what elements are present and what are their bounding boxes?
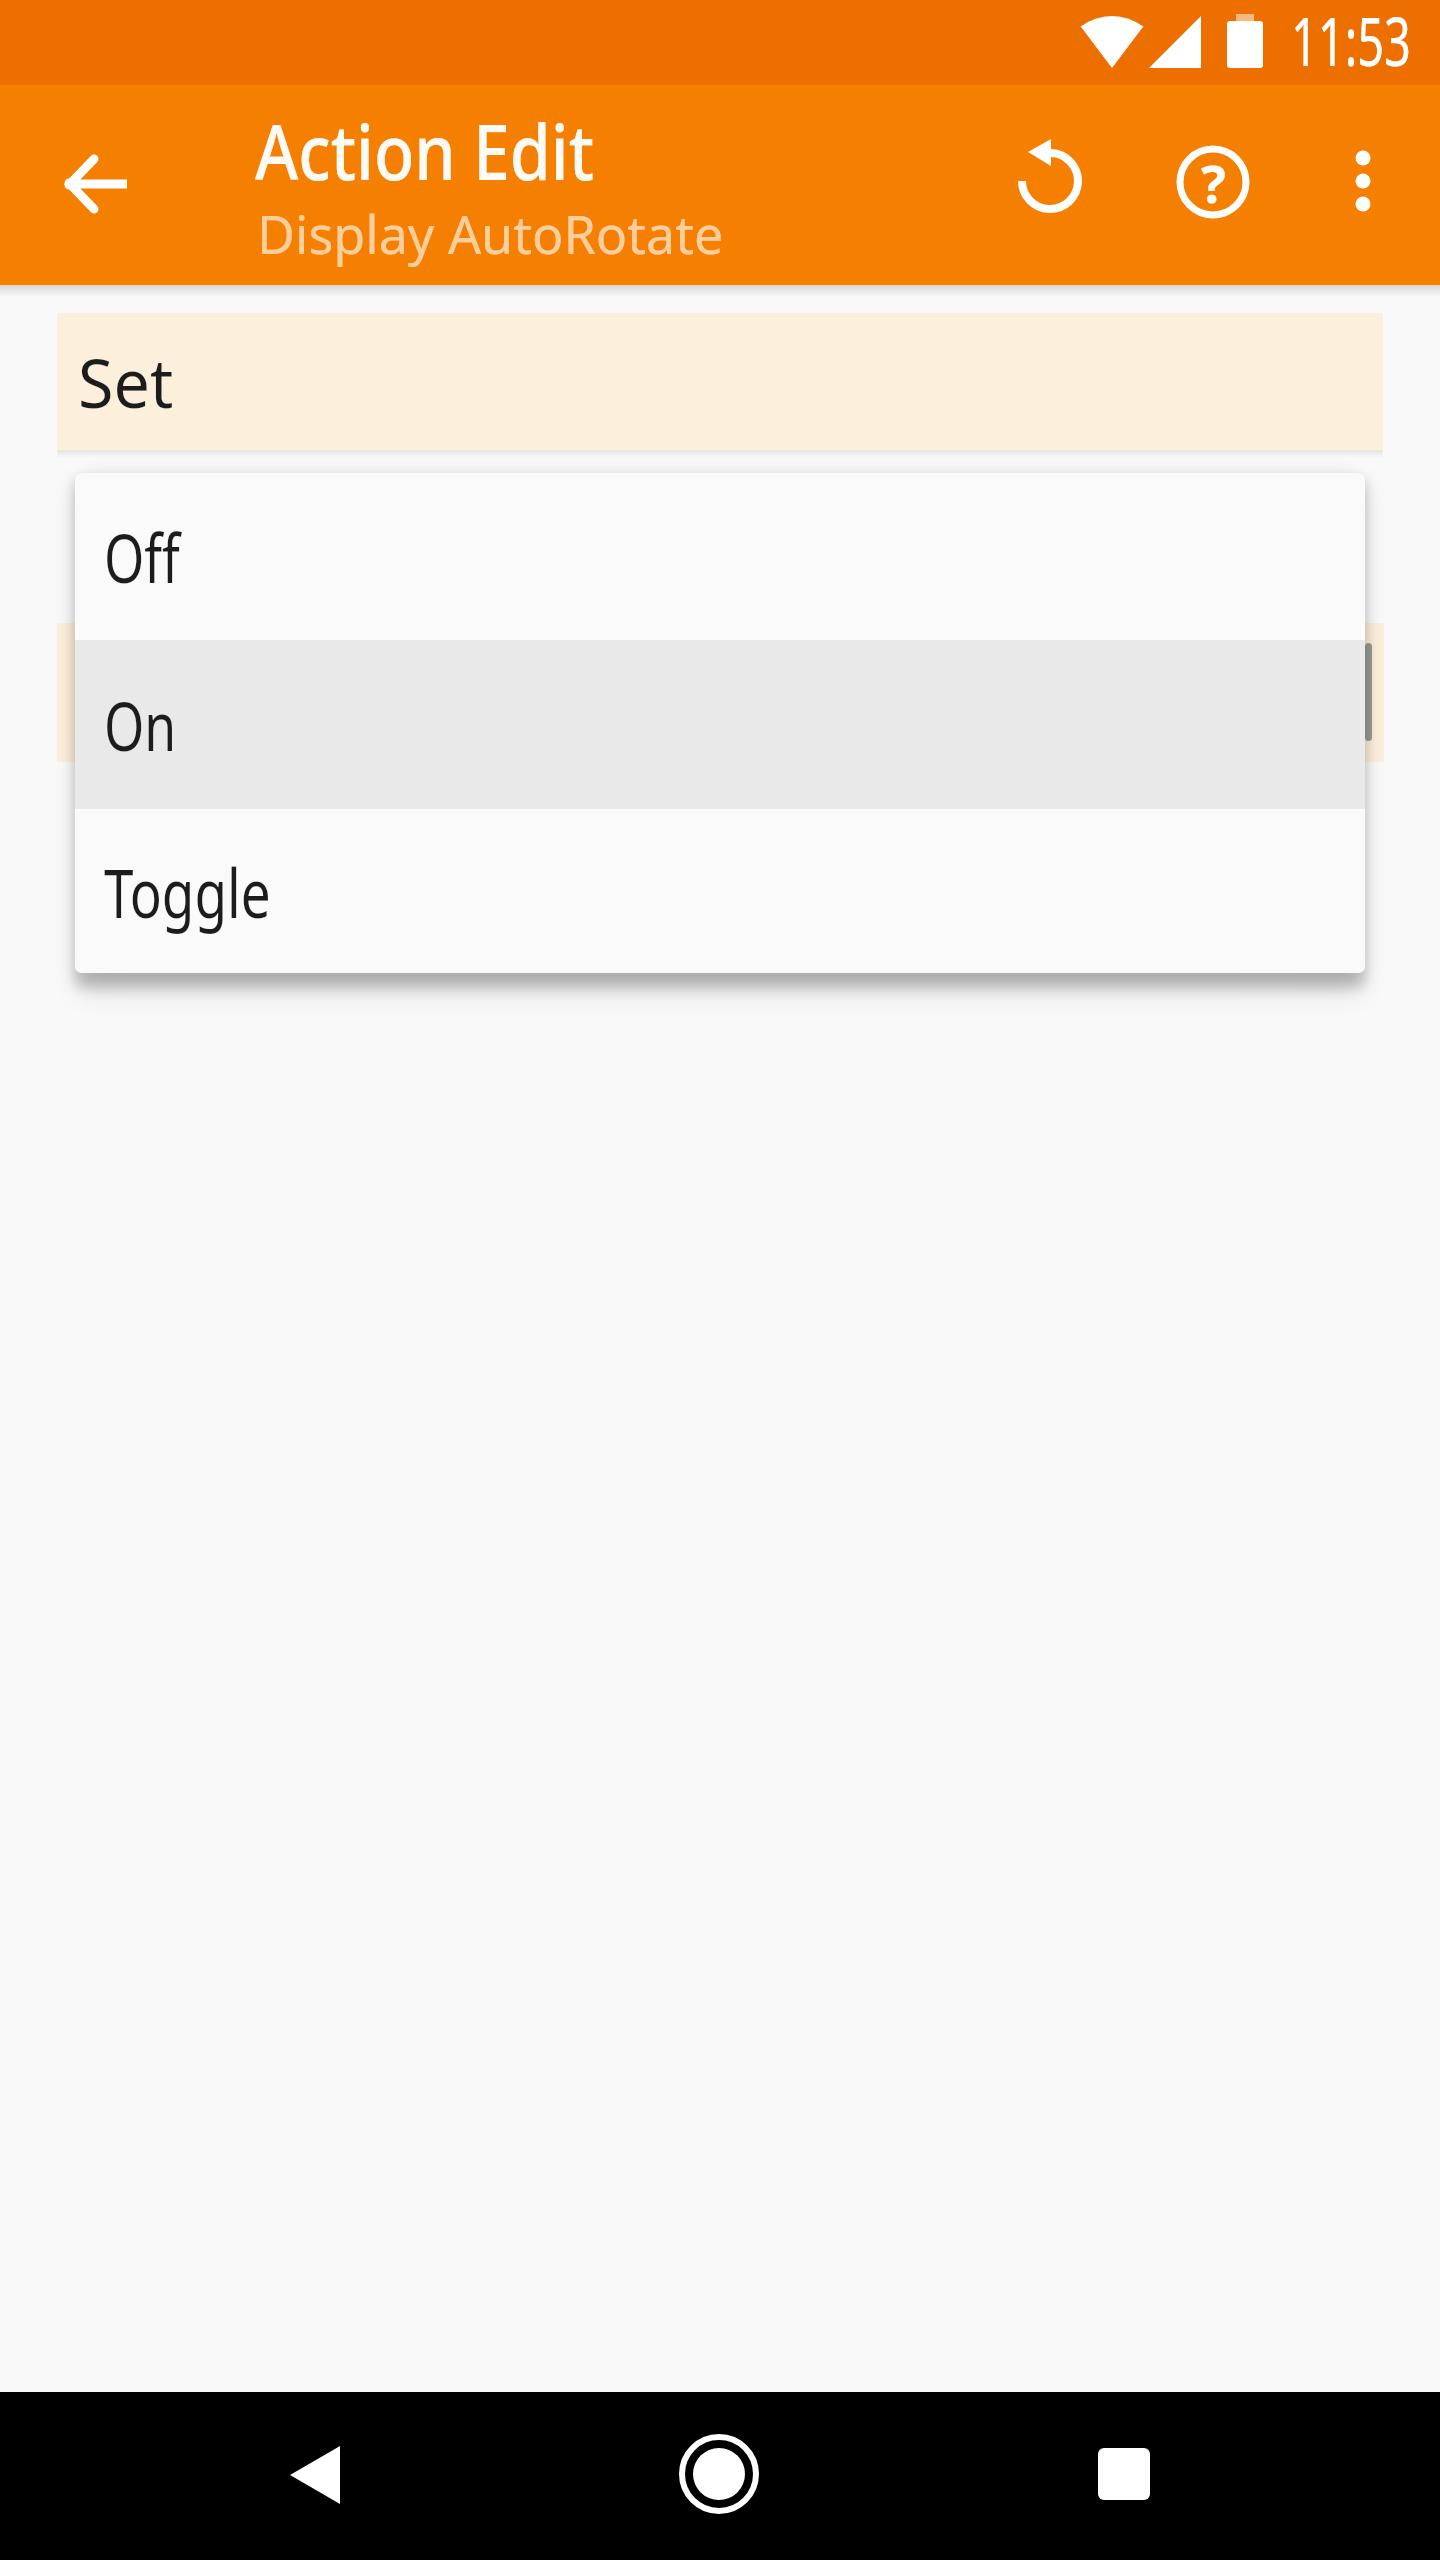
button[interactable] — [47, 134, 147, 234]
staticText: 11:53 — [1291, 0, 1411, 78]
button[interactable]: On — [75, 640, 1365, 809]
button[interactable] — [669, 2424, 769, 2524]
button[interactable]: Off — [75, 473, 1365, 640]
staticText: Off — [104, 510, 180, 603]
button[interactable]: Toggle — [75, 809, 1365, 973]
staticText: Display AutoRotate — [257, 198, 724, 269]
button[interactable] — [1313, 131, 1413, 231]
staticText: ? — [1201, 147, 1226, 218]
button[interactable] — [997, 131, 1097, 231]
staticText: Action Edit — [255, 99, 594, 203]
button[interactable]: ? — [1163, 132, 1263, 232]
button[interactable]: Set — [57, 313, 1383, 450]
staticText: Set — [78, 335, 174, 428]
staticText: Toggle — [104, 845, 271, 938]
button[interactable] — [265, 2425, 365, 2525]
button[interactable] — [1074, 2424, 1174, 2524]
staticText: On — [104, 678, 177, 771]
